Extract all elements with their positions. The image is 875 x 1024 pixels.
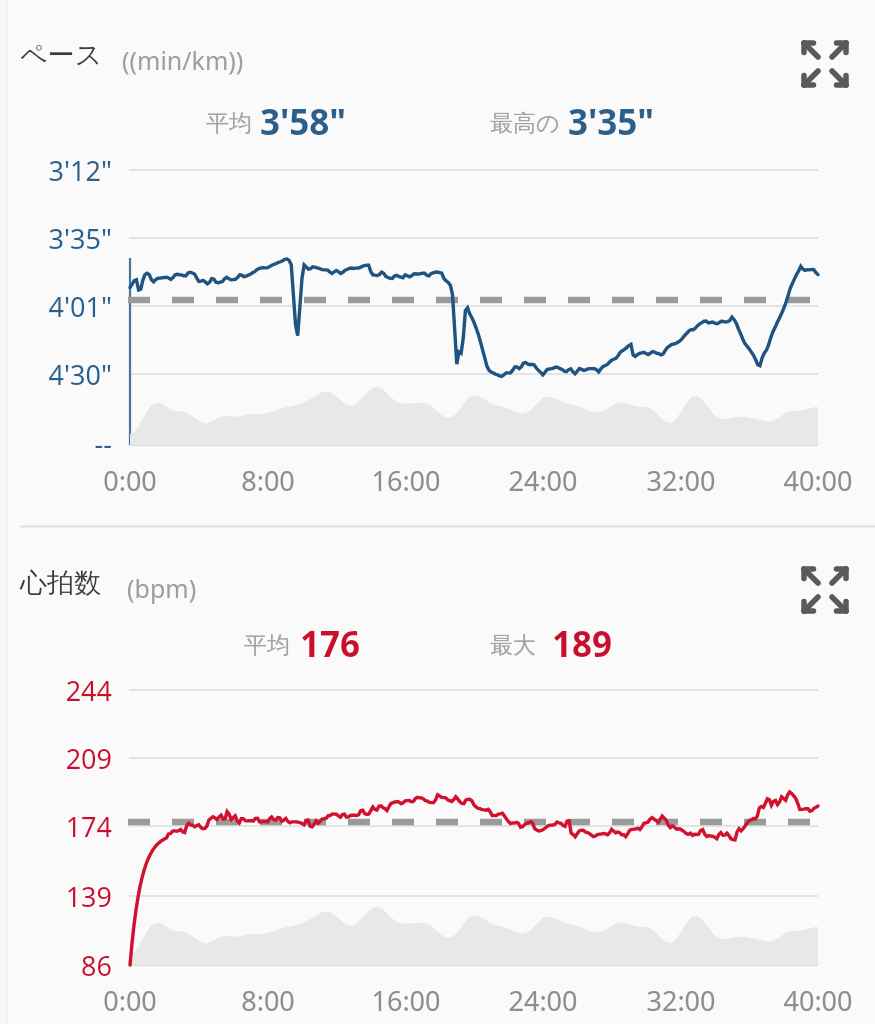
- button[interactable]: ペースグラフを拡大: [797, 36, 853, 92]
- staticText: 8:00: [213, 462, 323, 499]
- staticText: 8:00: [213, 982, 323, 1019]
- staticText: 16:00: [351, 982, 461, 1019]
- staticText: 平均: [206, 109, 252, 138]
- staticText: 40:00: [763, 462, 873, 499]
- staticText: 40:00: [763, 982, 873, 1019]
- staticText: 0:00: [75, 462, 185, 499]
- staticText: 24:00: [488, 462, 598, 499]
- staticText: 4'30": [16, 356, 112, 392]
- staticText: 0:00: [75, 982, 185, 1019]
- staticText: 心拍数: [20, 566, 101, 600]
- staticText: 174: [16, 808, 112, 844]
- staticText: 最大: [490, 631, 536, 660]
- staticText: 3'35": [16, 220, 112, 256]
- staticText: --: [16, 425, 112, 461]
- staticText: 189: [552, 620, 613, 668]
- staticText: 平均: [244, 631, 290, 660]
- staticText: ペース: [20, 38, 103, 72]
- button[interactable]: ペース: [20, 38, 103, 72]
- staticText: 24:00: [488, 982, 598, 1019]
- staticText: 3'35": [568, 98, 655, 146]
- staticText: 139: [16, 878, 112, 914]
- button[interactable]: 心拍数グラフを拡大: [797, 562, 853, 618]
- staticText: 4'01": [16, 288, 112, 324]
- staticText: 3'58": [260, 98, 347, 146]
- staticText: 最高の: [490, 109, 560, 138]
- staticText: 209: [16, 740, 112, 776]
- staticText: 32:00: [626, 462, 736, 499]
- staticText: 16:00: [351, 462, 461, 499]
- staticText: ((min/km)): [122, 43, 244, 77]
- staticText: 86: [16, 947, 112, 983]
- staticText: 244: [16, 672, 112, 708]
- staticText: (bpm): [127, 571, 197, 605]
- button[interactable]: 心拍数: [20, 566, 101, 600]
- staticText: 176: [300, 620, 361, 668]
- staticText: 32:00: [626, 982, 736, 1019]
- staticText: 3'12": [16, 152, 112, 188]
